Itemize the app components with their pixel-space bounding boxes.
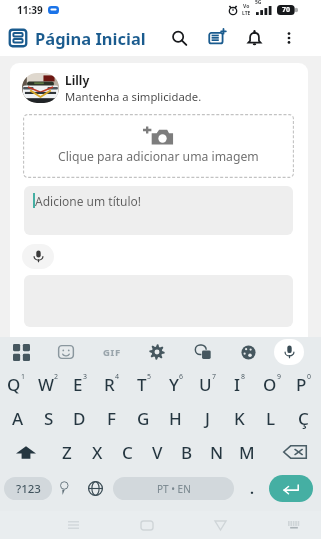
staticText: F bbox=[107, 407, 116, 430]
staticText: U bbox=[199, 373, 212, 396]
staticText: 9 bbox=[277, 372, 282, 382]
staticText: 5 bbox=[147, 372, 152, 382]
staticText: 3 bbox=[83, 372, 88, 382]
staticText: Página Inicial bbox=[35, 27, 146, 49]
button[interactable]: PT • EN bbox=[113, 477, 234, 500]
button[interactable]: Ç bbox=[287, 401, 319, 435]
staticText: Adicione um título! bbox=[35, 193, 142, 209]
button[interactable]: Back bbox=[203, 511, 237, 539]
staticText: 5G bbox=[255, 0, 262, 6]
button[interactable]: T bbox=[128, 367, 160, 401]
button[interactable]: GIF bbox=[90, 339, 134, 365]
button[interactable]: X bbox=[82, 435, 112, 469]
staticText: Clique para adicionar uma imagem bbox=[58, 148, 259, 165]
staticText: Lilly bbox=[65, 72, 90, 88]
button[interactable]: M bbox=[232, 435, 262, 469]
button[interactable]: More options bbox=[273, 20, 305, 56]
staticText: W bbox=[38, 373, 54, 396]
button[interactable]: Y bbox=[160, 367, 192, 401]
staticText: 4 bbox=[115, 372, 120, 382]
button[interactable]: Backspace bbox=[268, 435, 321, 469]
staticText: T bbox=[137, 373, 147, 396]
staticText: J bbox=[205, 407, 210, 430]
button[interactable]: Shift bbox=[0, 435, 51, 469]
button[interactable]: Change language bbox=[77, 473, 113, 503]
staticText: C bbox=[122, 441, 133, 464]
button[interactable]: P bbox=[288, 367, 320, 401]
button[interactable]: Search bbox=[161, 20, 198, 56]
button[interactable]: Z bbox=[51, 435, 82, 469]
staticText: 1 bbox=[21, 372, 26, 382]
staticText: PT • EN bbox=[157, 482, 191, 496]
button[interactable]: R bbox=[96, 367, 128, 401]
staticText: 8 bbox=[241, 372, 246, 382]
button[interactable]: Enter bbox=[269, 475, 313, 502]
button[interactable]: Apps bbox=[0, 338, 42, 366]
button[interactable]: Voice input bbox=[22, 244, 54, 269]
button[interactable]: D bbox=[64, 401, 95, 435]
button[interactable]: F bbox=[95, 401, 127, 435]
button[interactable]: I bbox=[224, 367, 256, 401]
staticText: ?123 bbox=[16, 481, 41, 497]
button[interactable]: Home bbox=[130, 511, 164, 539]
staticText: . bbox=[250, 479, 254, 498]
button[interactable]: N bbox=[202, 435, 232, 469]
button[interactable]: Hide keyboard bbox=[277, 511, 311, 539]
staticText: GIF bbox=[103, 346, 121, 359]
button[interactable]: ?123 bbox=[4, 477, 52, 500]
staticText: Z bbox=[62, 441, 72, 464]
button[interactable]: Stickers bbox=[42, 338, 90, 366]
button[interactable]: C bbox=[112, 435, 142, 469]
staticText: 0 bbox=[307, 372, 312, 382]
button[interactable]: Notifications bbox=[236, 20, 273, 56]
staticText: LTE bbox=[242, 10, 251, 17]
button[interactable]: A bbox=[2, 401, 33, 435]
button[interactable]: H bbox=[159, 401, 191, 435]
staticText: V bbox=[152, 441, 163, 464]
staticText: P bbox=[296, 373, 307, 396]
button[interactable]: U bbox=[192, 367, 224, 401]
staticText: H bbox=[169, 407, 182, 430]
staticText: 7 bbox=[212, 372, 217, 382]
staticText: X bbox=[92, 441, 103, 464]
button[interactable]: Q bbox=[1, 367, 32, 401]
button[interactable]: W bbox=[32, 367, 64, 401]
staticText: O bbox=[263, 373, 277, 396]
button[interactable]: G bbox=[127, 401, 159, 435]
button[interactable]: V bbox=[142, 435, 172, 469]
button[interactable]: K bbox=[223, 401, 255, 435]
staticText: Y bbox=[169, 373, 179, 396]
button[interactable]: Settings bbox=[134, 338, 180, 366]
staticText: R bbox=[104, 373, 115, 396]
staticText: Vo bbox=[243, 3, 250, 10]
button[interactable]: Recents bbox=[56, 511, 90, 539]
staticText: 6 bbox=[179, 372, 184, 382]
staticText: A bbox=[12, 407, 24, 430]
staticText: L bbox=[266, 407, 276, 430]
staticText: Mantenha a simplicidade. bbox=[65, 89, 202, 104]
button[interactable]: Adicione um título! bbox=[24, 186, 293, 235]
staticText: N bbox=[210, 441, 224, 464]
staticText: Q bbox=[7, 373, 21, 396]
staticText: M bbox=[239, 441, 255, 464]
button[interactable]: Emoji bbox=[52, 473, 77, 503]
button[interactable]: . bbox=[234, 473, 269, 503]
staticText: K bbox=[234, 407, 245, 430]
button[interactable]: Themes bbox=[226, 338, 271, 366]
button[interactable]: J bbox=[191, 401, 223, 435]
staticText: Ç bbox=[298, 407, 309, 430]
staticText: 11:39 bbox=[17, 3, 43, 17]
button[interactable]: E bbox=[64, 367, 96, 401]
button[interactable]: Voice typing bbox=[274, 339, 304, 365]
button[interactable]: O bbox=[256, 367, 288, 401]
staticText: 2 bbox=[54, 372, 59, 382]
button[interactable]: Clique para adicionar uma imagem bbox=[23, 114, 294, 178]
staticText: E bbox=[73, 373, 83, 396]
staticText: 70 bbox=[282, 5, 291, 15]
button[interactable]: Translate bbox=[180, 338, 226, 366]
button[interactable]: B bbox=[172, 435, 202, 469]
button[interactable]: S bbox=[33, 401, 64, 435]
button[interactable]: New post bbox=[198, 20, 236, 56]
button[interactable]: L bbox=[255, 401, 287, 435]
